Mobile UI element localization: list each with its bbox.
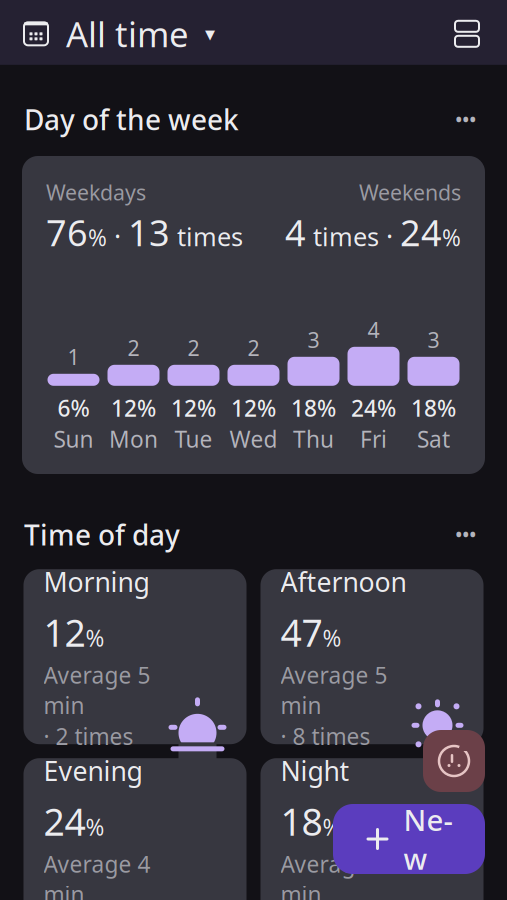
button[interactable]: Afternoon — [260, 569, 483, 744]
staticText: Fri — [360, 424, 387, 454]
staticText: Morning — [43, 564, 149, 599]
staticText: Average 5 min — [280, 660, 387, 720]
staticText: % — [88, 222, 107, 252]
staticText: Time of day — [24, 516, 180, 553]
button[interactable]: Evening — [23, 758, 246, 900]
staticText: Average 3 min — [280, 849, 387, 900]
staticText: times — [306, 220, 379, 253]
staticText: Wed — [229, 424, 277, 454]
staticText: 2 — [247, 333, 259, 362]
staticText: 76 — [46, 208, 88, 256]
staticText: 12% — [171, 393, 216, 423]
button[interactable]: More options for Day of the week — [449, 104, 483, 134]
staticText: Weekends — [359, 178, 461, 206]
staticText: times — [170, 220, 243, 253]
staticText: Evening — [43, 753, 142, 788]
staticText: 12% — [231, 393, 276, 423]
staticText: · 2 times — [43, 721, 133, 751]
staticText: 18% — [411, 393, 456, 423]
staticText: 24 — [43, 796, 85, 846]
staticText: 13 — [128, 208, 170, 256]
staticText: Night — [280, 753, 349, 788]
staticText: Tue — [174, 424, 212, 454]
staticText: New — [403, 800, 452, 878]
staticText: · — [107, 218, 128, 253]
staticText: 12 — [43, 607, 85, 657]
button[interactable]: More options for Time of day — [449, 520, 483, 550]
staticText: Thu — [293, 424, 334, 454]
button[interactable]: Morning — [23, 569, 246, 744]
staticText: 24% — [351, 393, 396, 423]
staticText: Average 4 min — [43, 849, 150, 900]
staticText: 47 — [280, 607, 322, 657]
staticText: Average 5 min — [43, 660, 150, 720]
staticText: 3 — [307, 325, 319, 354]
button[interactable]: Start timer — [423, 730, 485, 792]
staticText: % — [322, 623, 341, 653]
staticText: Afternoon — [280, 564, 406, 599]
staticText: 24 — [400, 208, 442, 256]
button[interactable]: All time — [22, 5, 215, 63]
staticText: Sat — [417, 424, 450, 454]
staticText: ••• — [455, 108, 476, 131]
staticText: 2 — [187, 333, 199, 362]
staticText: 1 — [67, 342, 79, 371]
staticText: ▾ — [205, 22, 215, 45]
staticText: ••• — [455, 523, 476, 546]
staticText: % — [85, 623, 104, 653]
staticText: % — [442, 222, 461, 252]
staticText: Weekdays — [46, 178, 146, 206]
staticText: % — [85, 812, 104, 842]
staticText: 18% — [291, 393, 336, 423]
staticText: 4 — [285, 208, 306, 256]
staticText: 2 — [127, 333, 139, 362]
staticText: Day of the week — [24, 101, 239, 138]
staticText: · 8 times — [280, 721, 370, 751]
staticText: Sun — [53, 424, 93, 454]
staticText: · — [379, 218, 400, 253]
staticText: 12% — [111, 393, 156, 423]
staticText: 4 — [367, 315, 379, 344]
staticText: All time — [66, 11, 189, 57]
button[interactable]: Night — [260, 758, 483, 900]
button[interactable]: New — [333, 804, 485, 874]
staticText: Mon — [109, 424, 158, 454]
staticText: 18 — [280, 796, 322, 846]
staticText: 6% — [57, 393, 89, 423]
staticText: 3 — [427, 325, 439, 354]
button[interactable]: Change layout — [449, 16, 485, 52]
staticText: % — [322, 812, 341, 842]
